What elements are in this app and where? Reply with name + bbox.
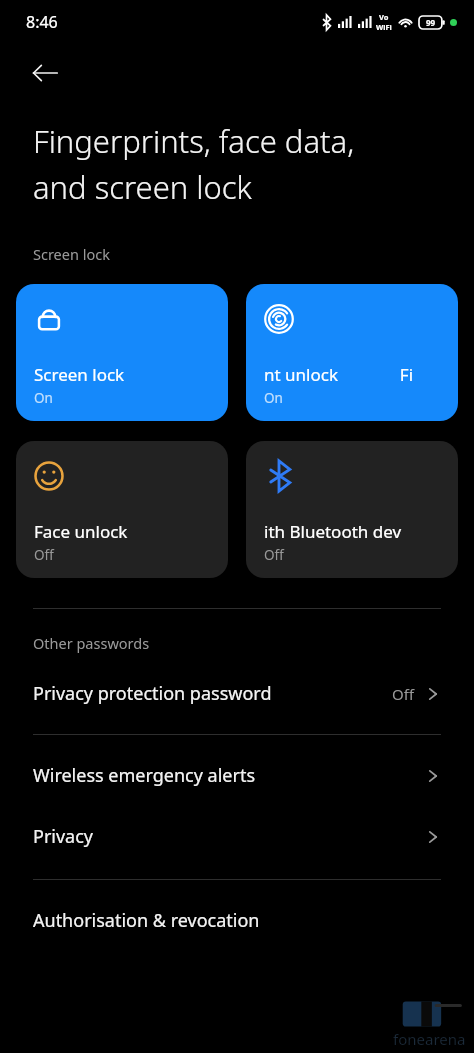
staticText: Authorisation & revocation: [33, 908, 425, 933]
staticText: Off: [34, 546, 54, 564]
staticText: Off: [264, 546, 284, 564]
staticText: 8:46: [26, 11, 58, 33]
button[interactable]: Wireless emergency alerts: [0, 757, 474, 794]
staticText: Screen lock: [33, 244, 110, 264]
staticText: Fingerprints, face data,: [33, 120, 355, 162]
button[interactable]: nt unlock Fi: [246, 284, 458, 421]
staticText: On: [34, 389, 53, 407]
staticText: 99: [426, 17, 436, 28]
staticText: Face unlock: [34, 520, 128, 543]
staticText: nt unlock Fi: [264, 363, 414, 386]
button[interactable]: Authorisation & revocation: [0, 902, 474, 939]
staticText: fonearena: [393, 1029, 466, 1049]
staticText: On: [264, 389, 283, 407]
staticText: Vo: [379, 12, 389, 22]
button[interactable]: Privacy: [0, 818, 474, 855]
button[interactable]: Privacy protection password: [0, 675, 474, 712]
button[interactable]: ith Bluetooth dev: [246, 441, 458, 578]
staticText: Privacy protection password: [33, 681, 392, 706]
staticText: Screen lock: [34, 363, 125, 386]
button[interactable]: Back: [16, 44, 74, 102]
button[interactable]: Screen lock: [16, 284, 228, 421]
button[interactable]: Face unlock: [16, 441, 228, 578]
staticText: Wireless emergency alerts: [33, 763, 425, 788]
staticText: and screen lock: [33, 166, 252, 208]
staticText: WiFi: [376, 22, 392, 32]
staticText: Privacy: [33, 824, 425, 849]
staticText: Other passwords: [33, 633, 150, 653]
staticText: ith Bluetooth dev: [264, 520, 402, 543]
staticText: Off: [392, 684, 415, 704]
